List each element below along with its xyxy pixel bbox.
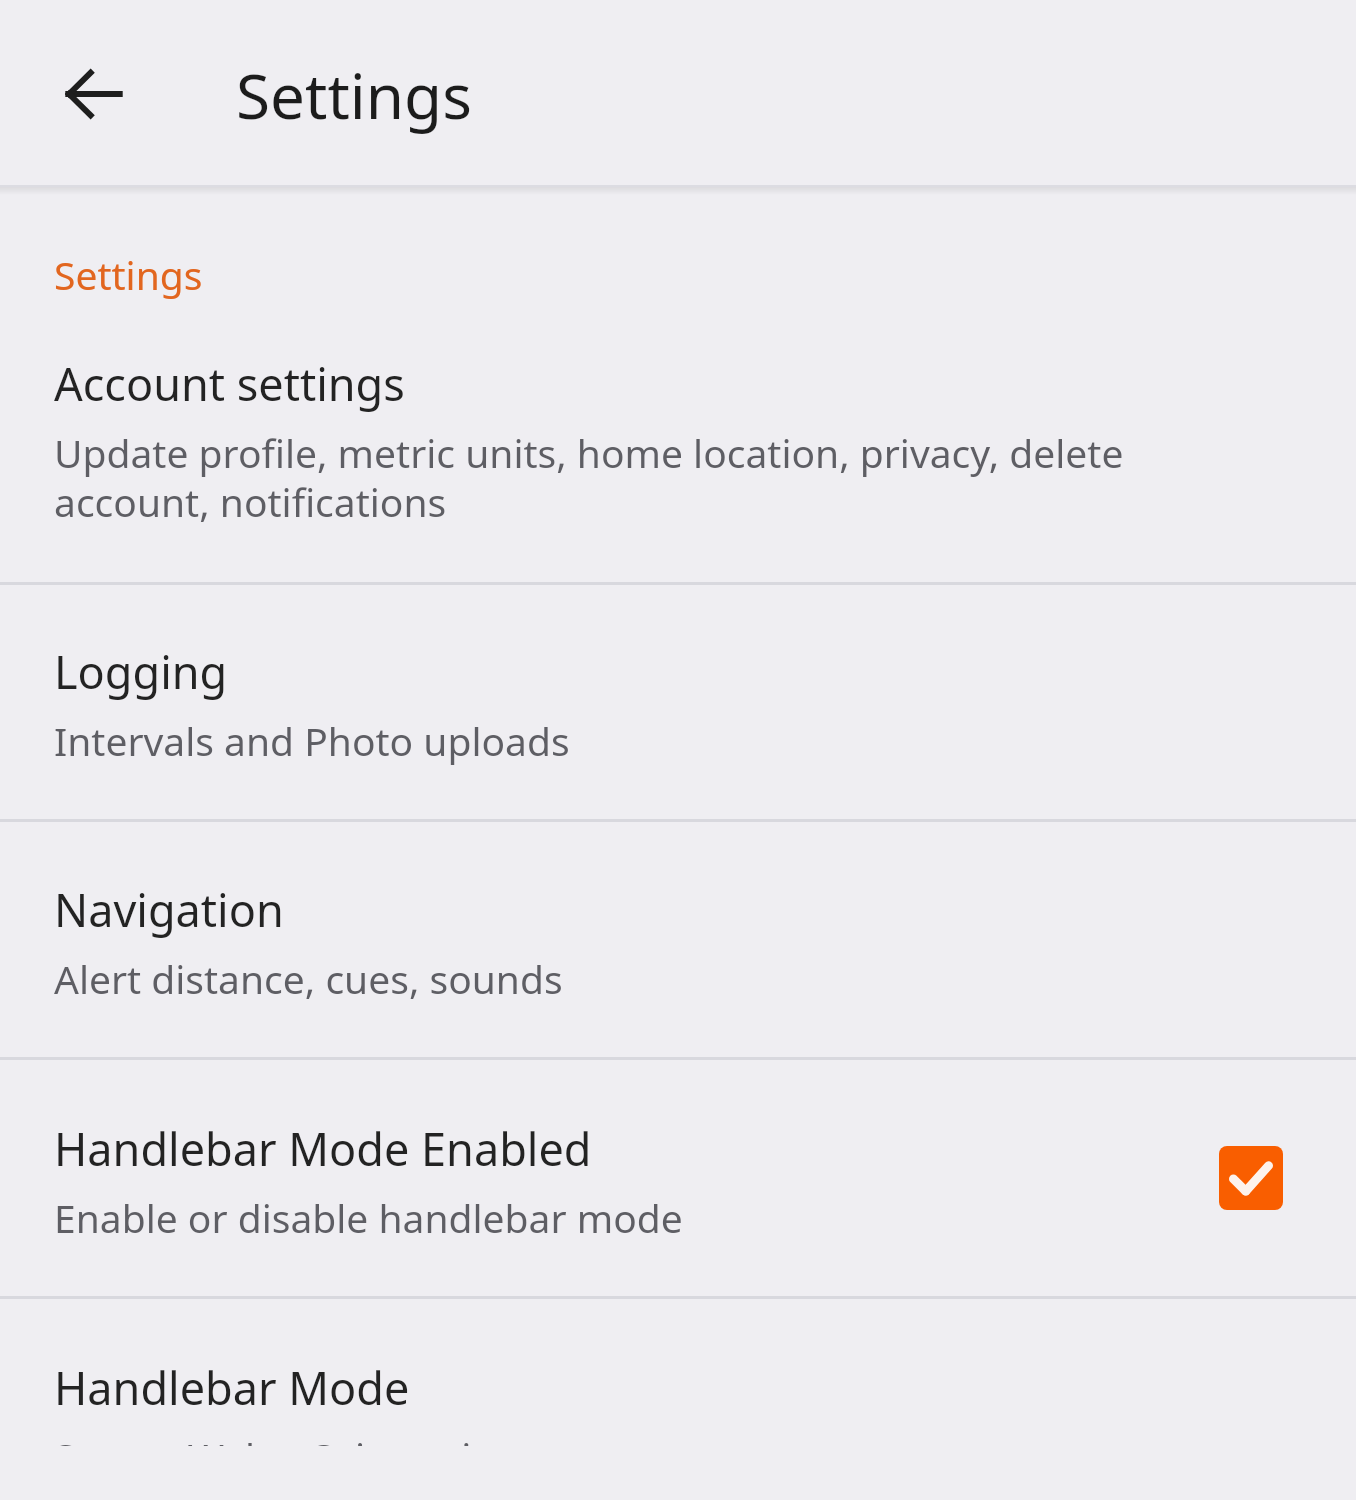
- staticText: Settings: [236, 53, 472, 137]
- button[interactable]: Navigation: [0, 822, 1356, 1057]
- staticText: Enable or disable handlebar mode: [54, 1191, 683, 1244]
- staticText: Logging: [54, 641, 228, 702]
- staticText: Navigation: [54, 879, 284, 940]
- staticText: Account settings: [54, 353, 405, 414]
- button[interactable]: Handlebar mode enabled checkbox: [1219, 1146, 1283, 1210]
- button[interactable]: Handlebar Mode: [0, 1299, 1356, 1500]
- staticText: Screen Wake, Orientation: [54, 1430, 1304, 1446]
- staticText: Handlebar Mode Enabled: [54, 1118, 592, 1179]
- staticText: Intervals and Photo uploads: [54, 714, 1304, 767]
- button[interactable]: Account settings: [0, 353, 1356, 582]
- button[interactable]: Logging: [0, 585, 1356, 819]
- staticText: Alert distance, cues, sounds: [54, 952, 1304, 1005]
- staticText: Settings: [54, 248, 203, 301]
- button[interactable]: Handlebar Mode Enabled: [0, 1060, 1356, 1296]
- staticText: Update profile, metric units, home locat…: [54, 426, 1164, 529]
- staticText: Handlebar Mode: [54, 1357, 410, 1418]
- button[interactable]: Back: [42, 42, 146, 146]
